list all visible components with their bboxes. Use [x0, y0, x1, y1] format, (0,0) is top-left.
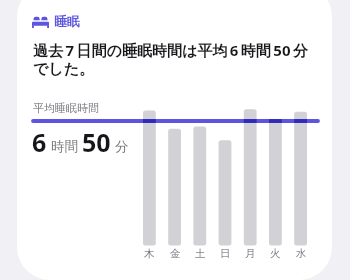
staticText: 土 [192, 247, 208, 260]
staticText: 日 [217, 247, 233, 260]
staticText: 過去 7 日間の睡眠時間は平均 6 時間 50 分 でした。 [33, 40, 323, 79]
staticText: 50 [82, 125, 111, 159]
staticText: 金 [167, 247, 183, 260]
staticText: 平均睡眠時間 [33, 101, 99, 115]
staticText: 木 [141, 247, 157, 260]
staticText: 月 [242, 247, 258, 260]
staticText: 時間 [51, 138, 78, 155]
staticText: 水 [293, 247, 309, 260]
button[interactable]: Sleep [32, 13, 80, 29]
staticText: 睡眠 [54, 13, 80, 29]
staticText: 分 [115, 138, 129, 155]
button[interactable] [17, 0, 332, 280]
other: Sleep [32, 14, 49, 28]
staticText: 火 [267, 247, 283, 260]
staticText: 6 [32, 125, 47, 159]
